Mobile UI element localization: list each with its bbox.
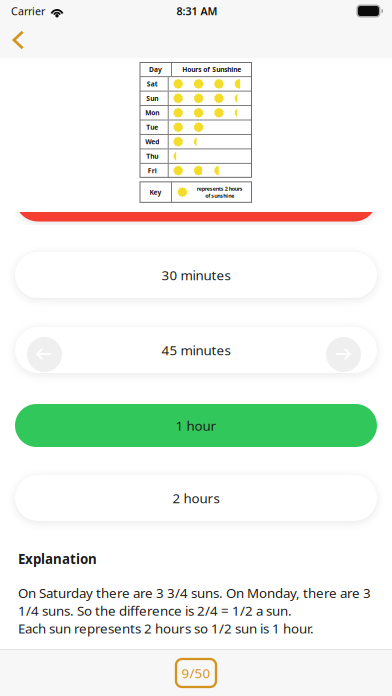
staticText: 9/50 <box>181 664 210 682</box>
staticText: 8:31 AM <box>176 4 217 18</box>
staticText: represents 2 hours of sunshine <box>196 185 242 199</box>
button[interactable]: Back <box>0 22 40 58</box>
staticText: Tue <box>146 123 158 132</box>
staticText: Day <box>149 65 162 74</box>
staticText: Mon <box>145 108 159 117</box>
staticText: Wed <box>145 137 159 146</box>
staticText: 1 hour <box>175 417 216 434</box>
staticText: 45 minutes <box>161 341 230 359</box>
staticText: Explanation <box>18 550 97 568</box>
staticText: 2 hours <box>172 489 219 507</box>
button[interactable]: 1 hour <box>15 404 377 447</box>
button[interactable]: Previous <box>27 337 62 372</box>
staticText: Fri <box>148 166 157 175</box>
button[interactable]: 45 minutes <box>15 327 377 373</box>
button[interactable]: 2 hours <box>15 475 377 521</box>
staticText: Carrier <box>11 4 45 18</box>
staticText: 30 minutes <box>161 266 230 284</box>
staticText: Key <box>149 188 161 197</box>
staticText: Sun <box>146 94 158 103</box>
staticText: On Saturday there are 3 3/4 suns. On Mon… <box>18 584 371 637</box>
button[interactable]: 9/50 <box>176 659 216 687</box>
staticText: Hours of Sunshine <box>182 65 241 74</box>
staticText: Sat <box>147 79 158 88</box>
button[interactable]: 30 minutes <box>15 252 377 298</box>
staticText: Thu <box>146 152 158 161</box>
button[interactable]: Next <box>326 337 361 372</box>
